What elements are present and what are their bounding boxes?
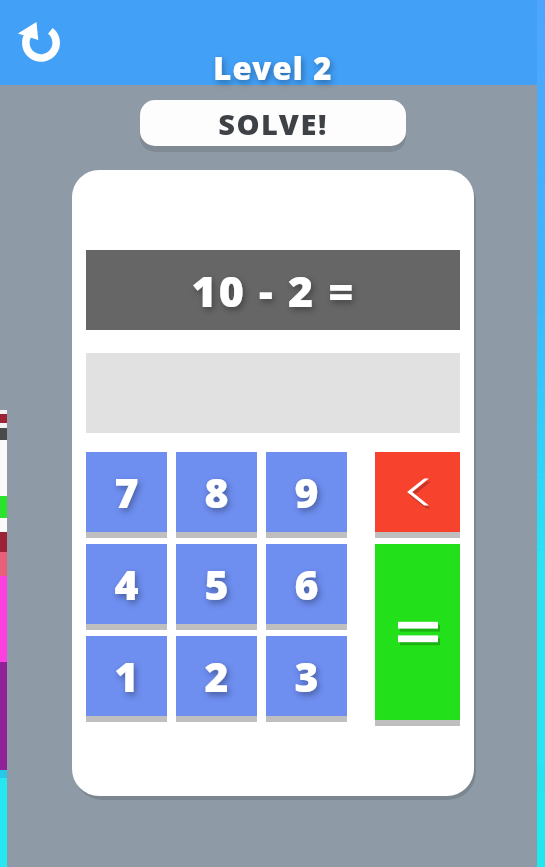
button[interactable]: Undo <box>14 14 68 68</box>
staticText: 8 <box>204 464 229 520</box>
button[interactable]: 2 <box>176 636 257 716</box>
button[interactable]: 4 <box>86 544 167 624</box>
button[interactable]: 7 <box>86 452 167 532</box>
button[interactable]: 1 <box>86 636 167 716</box>
button[interactable]: 8 <box>176 452 257 532</box>
staticText: 1 <box>114 648 139 704</box>
staticText: 3 <box>294 648 319 704</box>
button[interactable]: SOLVE! <box>140 100 406 146</box>
button[interactable]: 9 <box>266 452 347 532</box>
button[interactable]: Backspace <box>375 452 460 532</box>
button[interactable]: 6 <box>266 544 347 624</box>
button[interactable]: 3 <box>266 636 347 716</box>
staticText: 5 <box>204 556 229 612</box>
staticText: SOLVE! <box>218 104 328 143</box>
staticText: 7 <box>114 464 139 520</box>
button[interactable]: Equals <box>375 544 460 720</box>
staticText: 4 <box>114 556 139 612</box>
staticText: 9 <box>294 464 319 520</box>
staticText: 2 <box>204 648 229 704</box>
staticText: 6 <box>294 556 319 612</box>
staticText: 10 - 2 = <box>191 261 356 320</box>
button[interactable]: 5 <box>176 544 257 624</box>
staticText: Level 2 <box>213 47 333 89</box>
